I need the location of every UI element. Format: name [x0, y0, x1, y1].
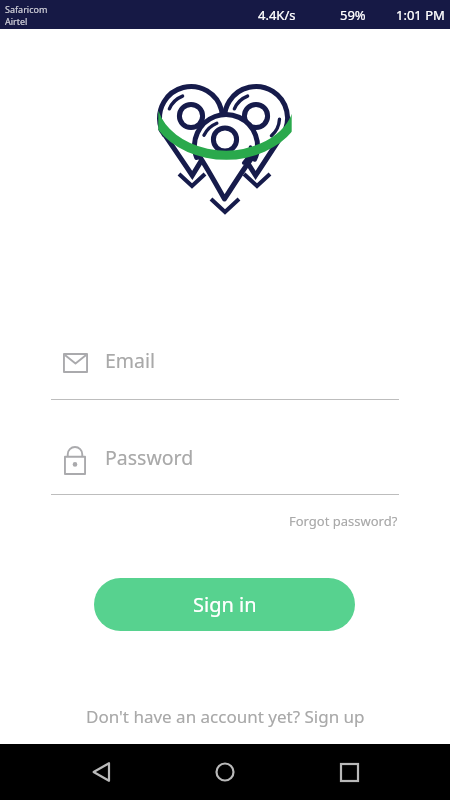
button[interactable]: Sign in	[94, 578, 355, 631]
button[interactable]: Home	[203, 750, 247, 794]
button[interactable]: Email	[105, 347, 156, 374]
button[interactable]: Password	[105, 444, 194, 471]
staticText: 1:01 PM	[396, 6, 445, 24]
button[interactable]: Back	[80, 750, 124, 794]
staticText: Safaricom	[5, 3, 48, 15]
staticText: 4.4K/s	[258, 6, 296, 24]
button[interactable]: Recents	[327, 750, 371, 794]
staticText: Airtel	[5, 15, 28, 27]
staticText: 59%	[340, 6, 366, 24]
button[interactable]: Forgot password?	[289, 512, 398, 530]
staticText: Sign in	[193, 591, 257, 618]
button[interactable]: Don't have an account yet? Sign up	[86, 705, 365, 728]
